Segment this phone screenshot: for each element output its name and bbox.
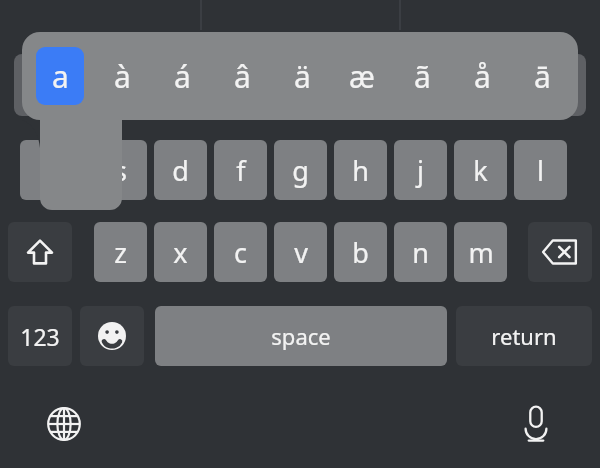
button[interactable]: â — [216, 47, 268, 105]
button[interactable]: m — [454, 222, 507, 282]
button[interactable]: Accent characters — [14, 32, 586, 210]
staticText: s — [114, 152, 127, 189]
staticText: b — [352, 234, 369, 271]
staticText: ã — [414, 56, 431, 97]
staticText: á — [174, 56, 191, 97]
staticText: à — [114, 56, 131, 97]
button[interactable]: g — [274, 140, 327, 200]
button[interactable]: l — [514, 140, 567, 200]
button[interactable]: x — [154, 222, 207, 282]
button[interactable]: å — [456, 47, 508, 105]
staticText: d — [172, 152, 189, 189]
button[interactable]: ā — [516, 47, 568, 105]
staticText: j — [417, 152, 424, 189]
button[interactable]: ã — [396, 47, 448, 105]
button[interactable]: return — [456, 306, 592, 366]
staticText: return — [491, 321, 557, 351]
button[interactable]: à — [96, 47, 148, 105]
button[interactable]: Backspace — [528, 222, 592, 282]
staticText: v — [294, 234, 308, 271]
button[interactable]: v — [274, 222, 327, 282]
staticText: a — [52, 56, 69, 97]
button[interactable]: k — [454, 140, 507, 200]
button[interactable]: space — [155, 306, 447, 366]
button[interactable]: z — [94, 222, 147, 282]
staticText: h — [352, 152, 369, 189]
staticText: ā — [534, 56, 551, 97]
button[interactable]: a — [36, 47, 84, 105]
button[interactable]: j — [394, 140, 447, 200]
button[interactable]: d — [154, 140, 207, 200]
staticText: l — [537, 152, 544, 189]
button[interactable]: æ — [336, 47, 388, 105]
staticText: c — [234, 234, 247, 271]
staticText: k — [473, 152, 488, 189]
staticText: f — [236, 152, 246, 189]
staticText: ä — [294, 56, 311, 97]
button[interactable]: c — [214, 222, 267, 282]
staticText: z — [114, 234, 127, 271]
staticText: 123 — [20, 321, 60, 352]
button[interactable]: b — [334, 222, 387, 282]
staticText: m — [468, 234, 494, 271]
staticText: å — [474, 56, 491, 97]
button[interactable]: Voice input — [512, 400, 560, 448]
staticText: space — [271, 321, 331, 351]
staticText: g — [292, 152, 309, 189]
staticText: â — [234, 56, 251, 97]
button[interactable]: s — [94, 140, 147, 200]
button[interactable]: á — [156, 47, 208, 105]
button[interactable]: Shift — [8, 222, 72, 282]
button[interactable]: ä — [276, 47, 328, 105]
staticText: n — [412, 234, 429, 271]
button[interactable]: 123 — [8, 306, 72, 366]
button[interactable]: f — [214, 140, 267, 200]
staticText: x — [173, 234, 188, 271]
button[interactable]: Emoji — [80, 306, 144, 366]
staticText: æ — [349, 56, 375, 97]
button[interactable] — [20, 140, 73, 200]
button[interactable]: Change keyboard — [40, 400, 88, 448]
button[interactable]: h — [334, 140, 387, 200]
button[interactable]: n — [394, 222, 447, 282]
